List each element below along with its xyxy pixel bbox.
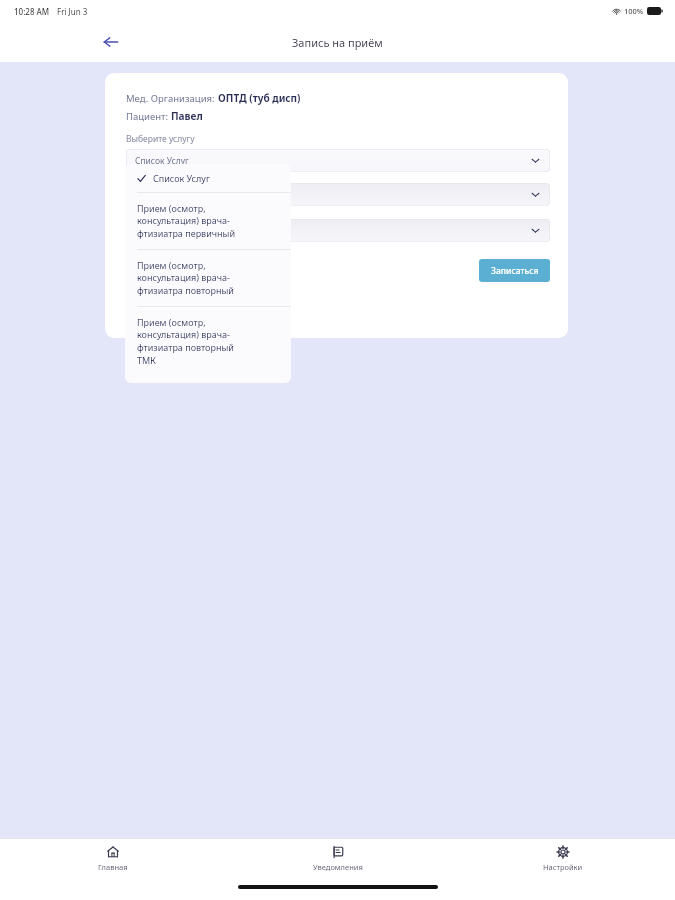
- button[interactable]: Главная: [0, 839, 225, 877]
- button[interactable]: [126, 183, 550, 206]
- staticText: Настройки: [543, 862, 583, 872]
- button[interactable]: Уведомления: [225, 839, 450, 877]
- staticText: Выберите услугу: [126, 133, 195, 145]
- staticText: Прием (осмотр, консультация) врача- фтиз…: [137, 316, 234, 367]
- staticText: Fri Jun 3: [57, 6, 88, 17]
- button[interactable]: Прием (осмотр, консультация) врача- фтиз…: [125, 250, 291, 306]
- staticText: 100%: [624, 6, 644, 16]
- button[interactable]: Прием (осмотр, консультация) врача- фтиз…: [125, 193, 291, 249]
- staticText: Уведомления: [313, 862, 363, 872]
- staticText: Прием (осмотр, консультация) врача- фтиз…: [137, 259, 234, 297]
- staticText: ОПТД (туб дисп): [218, 91, 301, 105]
- button[interactable]: Back: [96, 27, 126, 57]
- staticText: Прием (осмотр, консультация) врача- фтиз…: [137, 202, 236, 240]
- staticText: Мед. Организация:: [126, 92, 218, 105]
- staticText: Список Услуг: [135, 155, 189, 167]
- staticText: Пациент:: [126, 110, 171, 123]
- staticText: Запись на приём: [292, 35, 383, 50]
- button[interactable]: Прием (осмотр, консультация) врача- фтиз…: [125, 307, 291, 376]
- button[interactable]: Настройки: [450, 839, 675, 877]
- staticText: Записаться: [491, 265, 539, 277]
- staticText: Павел: [171, 109, 203, 123]
- staticText: Список Услуг: [153, 172, 210, 184]
- staticText: Главная: [98, 862, 128, 872]
- button[interactable]: [126, 219, 550, 242]
- button[interactable]: Список Услуг: [126, 149, 550, 172]
- button[interactable]: Записаться: [479, 259, 550, 282]
- staticText: 10:28 AM: [14, 6, 50, 17]
- button[interactable]: Список Услуг: [125, 164, 291, 192]
